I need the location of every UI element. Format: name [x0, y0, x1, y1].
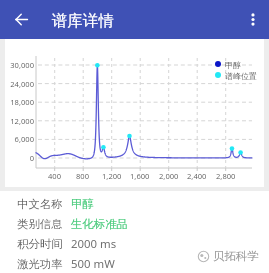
staticText: 800	[76, 171, 90, 181]
staticText: 2,800	[216, 171, 236, 181]
staticText: 贝拓科学	[213, 249, 259, 263]
staticText: 甲醇	[225, 60, 241, 70]
staticText: 12,000	[10, 116, 34, 126]
staticText: 甲醇	[71, 197, 94, 211]
staticText: 类别信息	[17, 217, 63, 231]
button[interactable]: More options	[241, 7, 264, 30]
staticText: 1,200	[102, 171, 122, 181]
button[interactable]: 积分时间	[0, 234, 269, 254]
staticText: 6,000	[14, 134, 34, 144]
button[interactable]: 激光功率	[0, 254, 269, 273]
staticText: 0	[29, 153, 34, 163]
staticText: 谱峰位置	[225, 71, 257, 81]
staticText: 500 mW	[71, 256, 115, 272]
staticText: 2,000	[159, 171, 179, 181]
staticText: 2000 ms	[71, 236, 117, 252]
staticText: 2,400	[187, 171, 207, 181]
button[interactable]: 中文名称	[0, 194, 269, 214]
staticText: 400	[48, 171, 62, 181]
staticText: 18,000	[10, 97, 34, 107]
staticText: 生化标准品	[71, 217, 128, 231]
button[interactable]: Back	[9, 7, 34, 32]
staticText: 激光功率	[17, 257, 63, 271]
staticText: 谱库详情	[52, 11, 114, 31]
staticText: 积分时间	[17, 237, 63, 251]
staticText: 24,000	[10, 79, 34, 89]
staticText: 30,000	[10, 60, 34, 70]
staticText: 1,600	[130, 171, 150, 181]
button[interactable]: 类别信息	[0, 214, 269, 234]
staticText: 中文名称	[17, 197, 63, 211]
